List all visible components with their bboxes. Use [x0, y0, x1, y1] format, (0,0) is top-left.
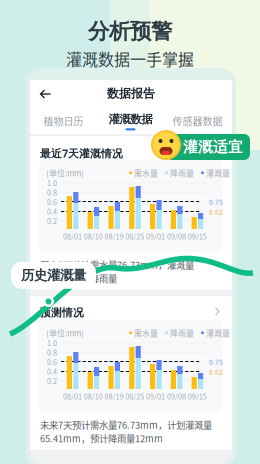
staticText: 0.2 — [47, 375, 57, 386]
staticText: 灌溉数据 — [108, 112, 152, 126]
staticText: 0.62 — [209, 207, 223, 217]
staticText: 0.8 — [47, 347, 57, 357]
staticText: 数据报告 — [107, 86, 155, 101]
staticText: 历史7天总计需水量76.73mm，灌溉量65.41mm，降雨量 — [40, 258, 194, 285]
staticText: 09/08 — [167, 391, 186, 402]
staticText: 08/19 — [104, 231, 123, 242]
staticText: 预测情况 — [40, 306, 84, 319]
staticText: 植物日历 — [43, 114, 83, 128]
staticText: 08/25 — [125, 391, 144, 402]
button[interactable]: 灌溉数据 — [97, 107, 164, 135]
staticText: 需水量 — [134, 327, 158, 339]
staticText: 0.6 — [47, 356, 57, 367]
staticText: 1.0 — [47, 337, 57, 348]
button[interactable]: 传感器数据 — [164, 107, 231, 135]
staticText: 最近7天灌溉情况 — [40, 146, 123, 160]
staticText: 08/10 — [84, 231, 103, 242]
staticText: (单位:mm) — [46, 167, 84, 179]
staticText: 降雨量 — [170, 327, 194, 339]
staticText: (单位:mm) — [46, 327, 84, 339]
staticText: 灌溉适宜 — [183, 138, 243, 156]
staticText: 0.4 — [47, 206, 57, 216]
staticText: 0.2 — [47, 215, 57, 226]
staticText: 降雨量 — [170, 167, 194, 179]
staticText: 08/01 — [63, 231, 82, 242]
staticText: 灌溉量 — [206, 167, 230, 179]
staticText: 传感器数据 — [172, 114, 222, 128]
staticText: 灌溉数据一手掌握 — [66, 47, 194, 70]
staticText: 09/01 — [146, 391, 165, 402]
staticText: 09/01 — [146, 231, 165, 242]
staticText: 1.0 — [47, 177, 57, 188]
staticText: 0.4 — [47, 366, 57, 376]
staticText: 0.6 — [47, 196, 57, 207]
staticText: 09/15 — [188, 231, 207, 242]
staticText: 历史灌溉量 — [21, 267, 86, 284]
staticText: 0.75 — [209, 357, 223, 367]
staticText: 09/08 — [167, 231, 186, 242]
staticText: 08/19 — [104, 391, 123, 402]
staticText: 需水量 — [134, 167, 158, 179]
staticText: 灌溉量 — [206, 327, 230, 339]
staticText: 分析预警 — [88, 18, 172, 45]
staticText: 未来7天预计需水量76.73mm，计划灌溉量65.41mm，预计降雨量12mm — [40, 418, 212, 445]
staticText: 08/10 — [84, 391, 103, 402]
staticText: 08/25 — [125, 231, 144, 242]
button[interactable]: 植物日历 — [30, 107, 97, 135]
staticText: 08/01 — [63, 391, 82, 402]
staticText: 0.8 — [47, 187, 57, 197]
button[interactable]: 返回 — [38, 87, 53, 101]
staticText: 0.75 — [209, 197, 223, 207]
staticText: 0.62 — [209, 367, 223, 377]
staticText: 09/15 — [188, 391, 207, 402]
